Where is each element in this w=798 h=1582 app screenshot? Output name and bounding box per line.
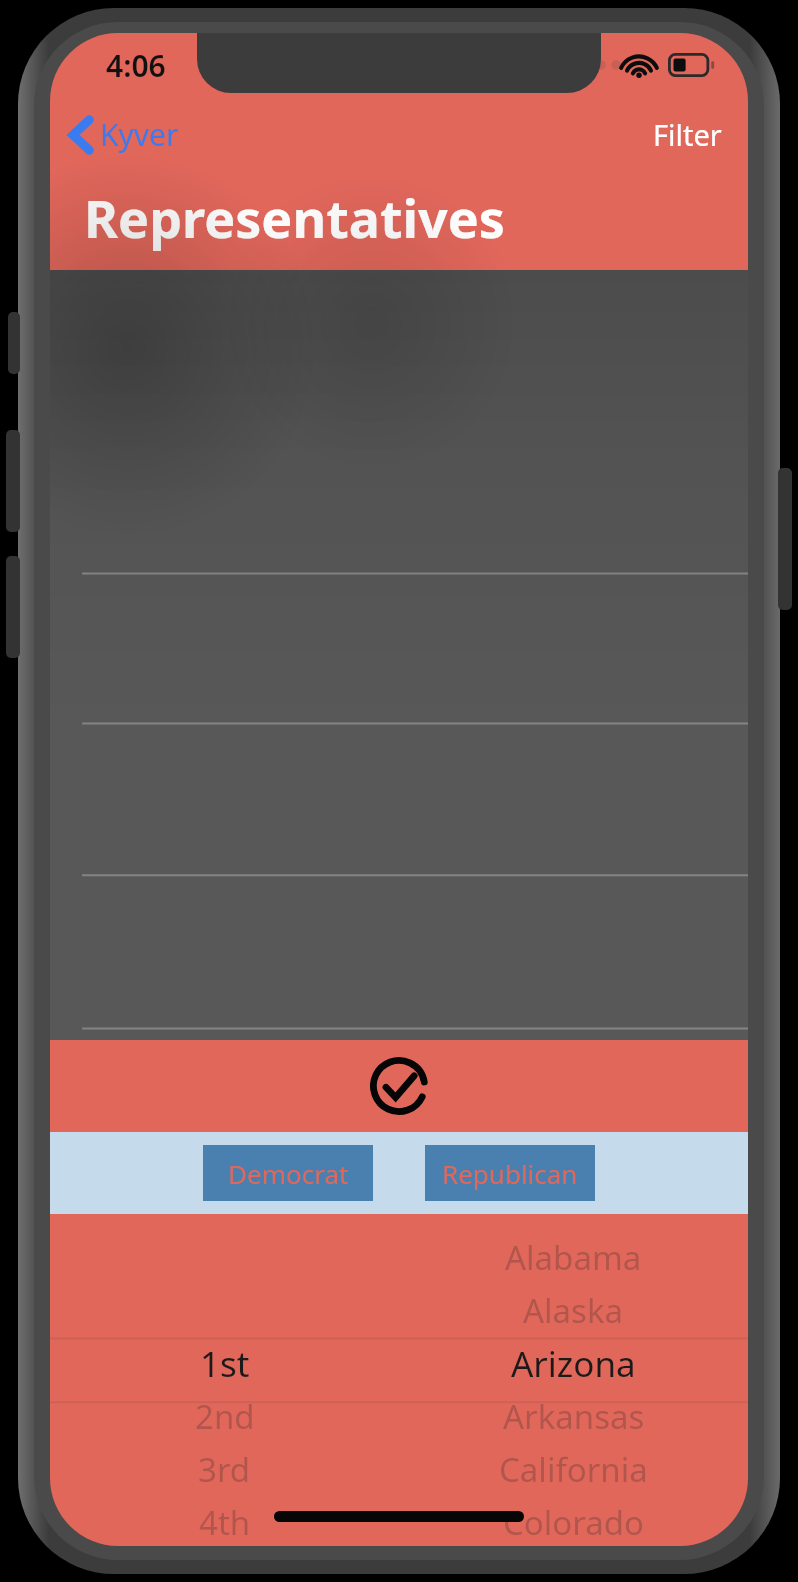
staticText: 1st [200,1340,250,1388]
staticText: 2nd [195,1394,255,1439]
staticText: Democrat [228,1156,349,1191]
button[interactable]: Kyver [50,106,193,163]
staticText: Filter [653,115,722,154]
button[interactable]: Democrat [203,1145,373,1201]
staticText: California [499,1447,648,1492]
button[interactable]: Filter [627,105,748,164]
staticText: Colorado [503,1500,645,1545]
staticText: Kyver [100,114,179,155]
staticText: Arkansas [503,1394,645,1439]
staticText: Arizona [511,1340,636,1388]
button[interactable]: State picker [399,1214,748,1546]
button[interactable]: Republican [425,1145,595,1201]
staticText: Representatives [84,182,505,253]
staticText: 4th [199,1500,251,1545]
staticText: 4:06 [106,45,166,86]
staticText: Republican [442,1156,578,1191]
staticText: 3rd [198,1447,251,1492]
staticText: Alabama [505,1235,642,1280]
button[interactable]: District picker [50,1214,399,1546]
button[interactable]: Confirm selection [363,1050,435,1122]
staticText: Alaska [523,1288,624,1333]
